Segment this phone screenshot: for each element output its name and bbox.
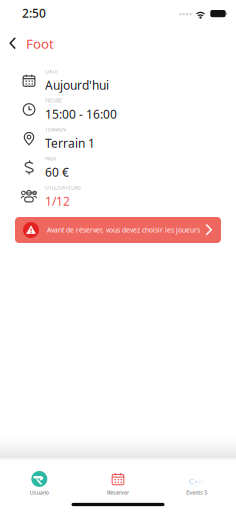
staticText: 1/12 xyxy=(45,193,70,209)
staticText: Terrain 1 xyxy=(45,135,95,151)
staticText: Usuario xyxy=(30,489,49,496)
staticText: UTILISATEURS xyxy=(45,184,81,191)
button[interactable]: Réserver xyxy=(79,460,157,495)
staticText: TERRAIN xyxy=(45,126,66,133)
staticText: Events 5 xyxy=(186,489,207,496)
staticText: 60 € xyxy=(45,164,69,180)
staticText: 2:50 xyxy=(22,5,46,21)
staticText: Réserver xyxy=(107,489,129,496)
staticText: DATE xyxy=(45,68,58,75)
button[interactable]: Events 5 xyxy=(157,460,236,495)
staticText: HEURE xyxy=(45,97,62,104)
staticText: Avant de réserver, vous devez choisir le… xyxy=(47,226,200,234)
staticText: 15:00 - 16:00 xyxy=(45,106,117,122)
button[interactable]: Usuario xyxy=(0,460,79,495)
button[interactable]: Avant de réserver, vous devez choisir le… xyxy=(15,217,221,243)
staticText: PRIX xyxy=(45,155,56,162)
staticText: Aujourd'hui xyxy=(45,77,109,93)
staticText: Foot xyxy=(26,35,54,52)
button[interactable]: Foot xyxy=(0,31,64,56)
